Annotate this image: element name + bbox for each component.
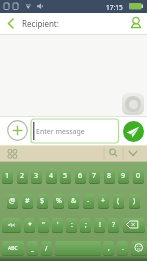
staticText: :: [71, 220, 73, 230]
button[interactable]: ABC: [2, 241, 24, 255]
staticText: 4: [49, 171, 54, 181]
button[interactable]: :: [66, 218, 77, 232]
button[interactable]: 9: [118, 169, 129, 183]
button[interactable]: +: [98, 194, 109, 208]
staticText: *: [28, 220, 32, 230]
staticText: /: [45, 244, 48, 253]
staticText: ?: [112, 220, 116, 230]
button[interactable]: [31, 119, 119, 143]
staticText: Enter message: [36, 127, 85, 137]
staticText: 8: [107, 171, 112, 181]
button[interactable]: 4: [46, 169, 57, 183]
staticText: (: [117, 196, 120, 206]
staticText: ': [57, 220, 59, 230]
button[interactable]: ): [129, 194, 140, 208]
staticText: 2: [20, 171, 25, 181]
staticText: $: [40, 196, 45, 206]
staticText: 7: [92, 171, 97, 181]
button[interactable]: _: [27, 241, 38, 255]
button[interactable]: [3, 146, 21, 161]
button[interactable]: /: [41, 241, 52, 255]
staticText: 17:15: [106, 3, 123, 12]
button[interactable]: [0, 13, 147, 34]
button[interactable]: 2: [17, 169, 28, 183]
button[interactable]: [8, 121, 28, 141]
staticText: &: [71, 196, 77, 206]
button[interactable]: -: [83, 194, 94, 208]
staticText: 3: [34, 171, 39, 181]
staticText: 1: [5, 171, 10, 181]
staticText: _: [31, 244, 34, 253]
staticText: ): [133, 196, 136, 206]
staticText: ;: [85, 220, 87, 230]
button[interactable]: ?: [108, 218, 119, 232]
button[interactable]: [55, 241, 101, 255]
button[interactable]: ": [38, 218, 49, 232]
button[interactable]: [105, 146, 122, 161]
staticText: 0: [136, 171, 141, 181]
button[interactable]: [122, 93, 144, 115]
button[interactable]: 6: [75, 169, 86, 183]
button[interactable]: %: [53, 194, 64, 208]
button[interactable]: ;: [80, 218, 91, 232]
button[interactable]: 3: [31, 169, 42, 183]
button[interactable]: ,: [103, 241, 114, 255]
button[interactable]: .: [117, 241, 128, 255]
staticText: @: [9, 196, 16, 206]
button[interactable]: 8: [104, 169, 115, 183]
staticText: =\<: [8, 222, 15, 228]
staticText: 9: [121, 171, 126, 181]
button[interactable]: [123, 121, 144, 142]
button[interactable]: 0: [133, 169, 144, 183]
staticText: -: [87, 196, 90, 206]
button[interactable]: 7: [89, 169, 100, 183]
button[interactable]: [123, 218, 145, 232]
staticText: +: [101, 196, 106, 206]
staticText: Recipient:: [22, 18, 59, 29]
button[interactable]: *: [24, 218, 35, 232]
staticText: .: [122, 243, 124, 253]
staticText: 5: [63, 171, 68, 181]
button[interactable]: (: [113, 194, 124, 208]
staticText: %: [56, 196, 62, 206]
button[interactable]: @: [7, 194, 18, 208]
button[interactable]: #: [22, 194, 33, 208]
button[interactable]: 1: [2, 169, 13, 183]
staticText: ,: [108, 243, 110, 253]
button[interactable]: &: [68, 194, 79, 208]
button[interactable]: !: [94, 218, 105, 232]
staticText: !: [99, 220, 101, 230]
button[interactable]: [131, 241, 147, 255]
button[interactable]: $: [37, 194, 48, 208]
button[interactable]: 5: [60, 169, 71, 183]
button[interactable]: =\<: [2, 218, 21, 232]
button[interactable]: [124, 146, 144, 161]
staticText: #: [25, 196, 30, 206]
staticText: 6: [78, 171, 83, 181]
staticText: ABC: [8, 245, 18, 252]
staticText: ": [42, 220, 45, 230]
button[interactable]: ': [52, 218, 63, 232]
